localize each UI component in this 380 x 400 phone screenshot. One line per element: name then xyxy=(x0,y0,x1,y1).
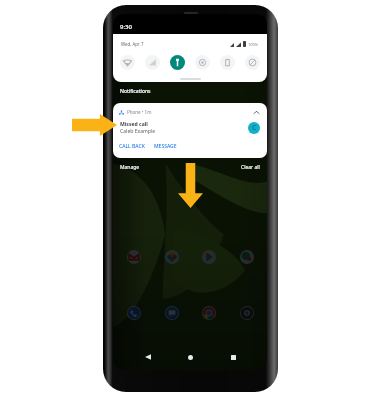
button[interactable]: Back xyxy=(140,349,156,365)
button[interactable]: Messages xyxy=(165,306,179,320)
staticText: Notifications xyxy=(120,88,151,95)
button[interactable]: Mobile data xyxy=(145,55,160,70)
button[interactable]: CALL BACK xyxy=(119,143,145,150)
button[interactable]: Chrome xyxy=(202,306,216,320)
staticText: Caleb Example xyxy=(120,128,156,135)
button[interactable]: Home xyxy=(182,349,198,365)
staticText: C xyxy=(252,123,257,133)
staticText: Wed, Apr 7 xyxy=(121,41,144,47)
button[interactable]: Recent apps xyxy=(225,349,241,365)
staticText: 9:30 xyxy=(120,23,132,31)
button[interactable]: Manage xyxy=(120,164,140,171)
button[interactable]: Maps xyxy=(240,250,254,264)
staticText: CALL BACK xyxy=(119,143,145,150)
button[interactable]: Do not disturb xyxy=(245,55,260,70)
button[interactable]: Collapse notification xyxy=(251,107,262,118)
button[interactable]: Play Store xyxy=(202,250,216,264)
staticText: Phone • 1m xyxy=(127,109,152,115)
button[interactable]: Camera xyxy=(240,306,254,320)
button[interactable]: MESSAGE xyxy=(154,143,177,150)
staticText: Clear all xyxy=(241,164,260,171)
button[interactable]: Flashlight xyxy=(170,55,185,70)
button[interactable]: Phone xyxy=(127,306,141,320)
button[interactable]: Auto rotate xyxy=(195,55,210,70)
staticText: Missed call xyxy=(120,121,148,128)
button[interactable]: Clear all xyxy=(241,164,260,171)
button[interactable]: Photos xyxy=(165,250,179,264)
staticText: Manage xyxy=(120,164,140,171)
staticText: MESSAGE xyxy=(154,143,177,150)
button[interactable]: Wi-Fi xyxy=(120,55,135,70)
button[interactable]: Battery saver xyxy=(220,55,235,70)
button[interactable]: Gmail xyxy=(127,250,141,264)
staticText: 100% xyxy=(248,42,259,47)
